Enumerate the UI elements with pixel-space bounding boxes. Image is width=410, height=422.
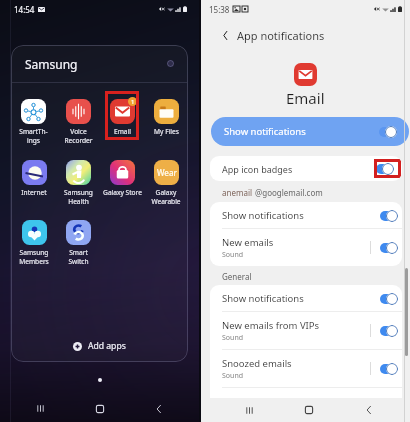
button[interactable]: Wear (151, 160, 181, 209)
button[interactable]: Toggle (376, 162, 394, 175)
staticText: @googlemail.com (253, 187, 323, 198)
button[interactable]: Voice Recorder (64, 99, 93, 148)
button[interactable]: Show notifications (210, 202, 402, 228)
staticText: Samsung Members (19, 248, 49, 266)
button[interactable]: Galaxy Store (103, 160, 142, 209)
button[interactable]: Recents (219, 398, 279, 422)
button[interactable]: New emails (210, 229, 402, 266)
staticText: New emails from VIPs (222, 319, 320, 332)
button[interactable]: Privacy and security (210, 388, 402, 422)
button[interactable]: Home (70, 396, 129, 421)
staticText: Privacy and security (222, 395, 311, 408)
staticText: New emails (222, 236, 274, 249)
button[interactable]: Samsung Members (19, 220, 49, 269)
staticText: 1 (131, 98, 135, 106)
staticText: Samsung Health (64, 188, 93, 206)
staticText: Samsung (25, 56, 78, 72)
button[interactable]: Add apps (11, 331, 188, 361)
staticText: Galaxy Wearable (151, 188, 181, 206)
staticText: Show notifications (222, 292, 304, 305)
button[interactable]: Internet (21, 160, 47, 209)
staticText: Galaxy Store (103, 188, 142, 197)
button[interactable]: Smart Switch (66, 220, 91, 269)
button[interactable]: 1 (110, 99, 135, 148)
staticText: Email (286, 88, 325, 108)
staticText: General (222, 271, 252, 282)
button[interactable]: My Files (154, 99, 179, 148)
button[interactable]: Toggle (379, 125, 397, 138)
button[interactable]: App icon badges (210, 156, 402, 181)
staticText: Wear (157, 167, 177, 178)
button[interactable]: Back (129, 396, 188, 421)
button[interactable]: Toggle (380, 324, 398, 337)
staticText: Show notifications (222, 209, 304, 222)
staticText: 14:54 (14, 4, 35, 15)
staticText: Voice Recorder (64, 127, 93, 145)
button[interactable]: Back (217, 27, 233, 43)
staticText: anemail (222, 187, 253, 198)
staticText: SmartTh- ings (19, 127, 48, 145)
button[interactable]: Show notifications (210, 285, 402, 311)
staticText: Add apps (88, 340, 126, 352)
button[interactable]: Snoozed emails (210, 350, 402, 387)
staticText: Smart Switch (68, 248, 89, 266)
button[interactable]: Toggle (380, 209, 398, 222)
button[interactable]: Recents (11, 396, 70, 421)
staticText: Show notifications (224, 125, 306, 138)
staticText: Snoozed emails (222, 357, 292, 370)
button[interactable]: Toggle (380, 362, 398, 375)
staticText: Sound (222, 333, 244, 343)
staticText: Email (114, 127, 131, 136)
button[interactable]: Home (279, 398, 339, 422)
staticText: App notifications (237, 28, 325, 43)
staticText: My Files (154, 127, 179, 136)
staticText: Internet (21, 188, 47, 197)
staticText: Sound (222, 250, 244, 260)
button[interactable]: Samsung Health (64, 160, 93, 209)
button[interactable]: Toggle (380, 241, 398, 254)
button[interactable]: Show notifications (211, 117, 409, 146)
button[interactable]: SmartTh- ings (19, 99, 48, 148)
staticText: 15:38 (209, 4, 230, 15)
staticText: App icon badges (222, 163, 293, 175)
button[interactable]: Folder options (167, 60, 174, 67)
button[interactable]: Toggle (380, 292, 398, 305)
button[interactable]: New emails from VIPs (210, 312, 402, 349)
staticText: Sound (222, 371, 244, 381)
button[interactable]: Back (339, 398, 399, 422)
